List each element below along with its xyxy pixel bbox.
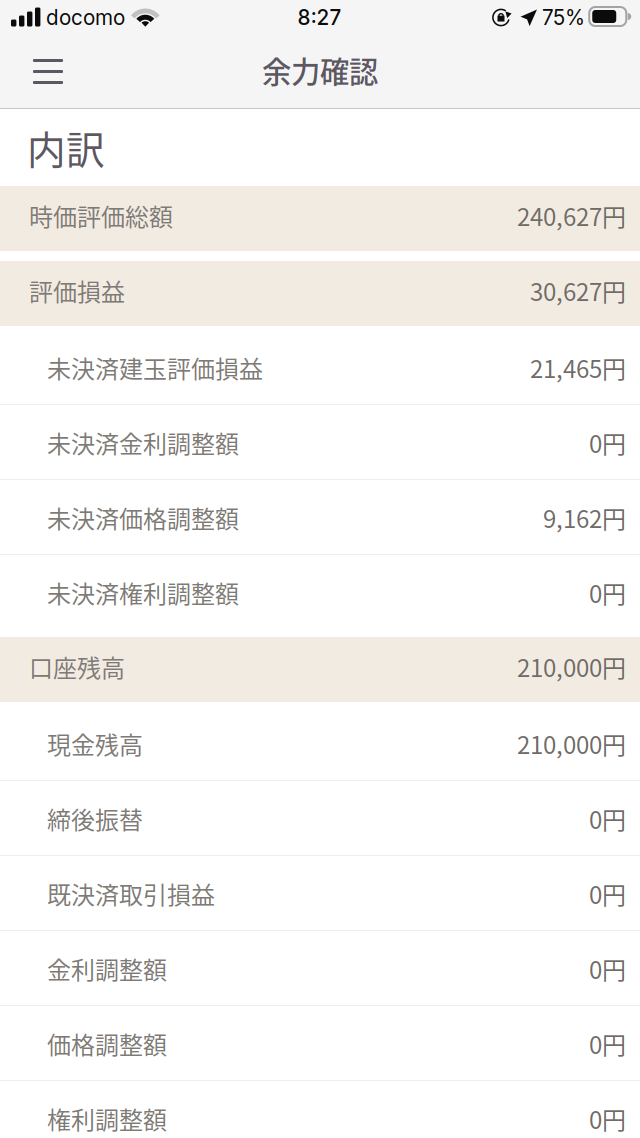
staticText: 口座残高 <box>29 649 125 684</box>
staticText: 0円 <box>589 876 626 911</box>
button[interactable]: 現金残高 <box>0 702 640 781</box>
staticText: 0円 <box>589 1026 626 1061</box>
button[interactable]: 権利調整額 <box>0 1081 640 1138</box>
staticText: 未決済金利調整額 <box>47 425 239 460</box>
staticText: 9,162円 <box>543 500 626 535</box>
staticText: 0円 <box>589 801 626 836</box>
staticText: 未決済権利調整額 <box>47 575 239 610</box>
staticText: 未決済価格調整額 <box>47 500 239 535</box>
button[interactable]: 時価評価総額 <box>0 186 640 251</box>
staticText: 未決済建玉評価損益 <box>47 350 263 385</box>
staticText: 0円 <box>589 575 626 610</box>
staticText: 締後振替 <box>47 801 143 836</box>
staticText: 権利調整額 <box>47 1101 167 1136</box>
staticText: 0円 <box>589 1101 626 1136</box>
staticText: 210,000円 <box>517 649 626 684</box>
staticText: docomo <box>46 5 125 30</box>
staticText: 75% <box>542 5 585 30</box>
staticText: 21,465円 <box>530 350 626 385</box>
staticText: 0円 <box>589 425 626 460</box>
button[interactable]: 未決済価格調整額 <box>0 480 640 555</box>
staticText: 210,000円 <box>517 726 626 761</box>
staticText: 現金残高 <box>47 726 143 761</box>
button[interactable]: 口座残高 <box>0 637 640 702</box>
button[interactable]: 既決済取引損益 <box>0 856 640 931</box>
button[interactable]: 評価損益 <box>0 261 640 326</box>
staticText: 余力確認 <box>262 49 378 91</box>
button[interactable]: Menu <box>15 42 81 101</box>
button[interactable]: 未決済金利調整額 <box>0 405 640 480</box>
staticText: 金利調整額 <box>47 951 167 986</box>
staticText: 30,627円 <box>530 273 626 308</box>
staticText: 既決済取引損益 <box>47 876 215 911</box>
button[interactable]: 締後振替 <box>0 781 640 856</box>
button[interactable]: 金利調整額 <box>0 931 640 1006</box>
button[interactable]: 価格調整額 <box>0 1006 640 1081</box>
staticText: 8:27 <box>297 5 341 30</box>
staticText: 240,627円 <box>517 198 626 233</box>
button[interactable]: 未決済権利調整額 <box>0 555 640 637</box>
staticText: 0円 <box>589 951 626 986</box>
staticText: 内訳 <box>27 119 105 175</box>
staticText: 時価評価総額 <box>29 198 173 233</box>
button[interactable]: 未決済建玉評価損益 <box>0 326 640 405</box>
staticText: 評価損益 <box>29 273 125 308</box>
staticText: 価格調整額 <box>47 1026 167 1061</box>
